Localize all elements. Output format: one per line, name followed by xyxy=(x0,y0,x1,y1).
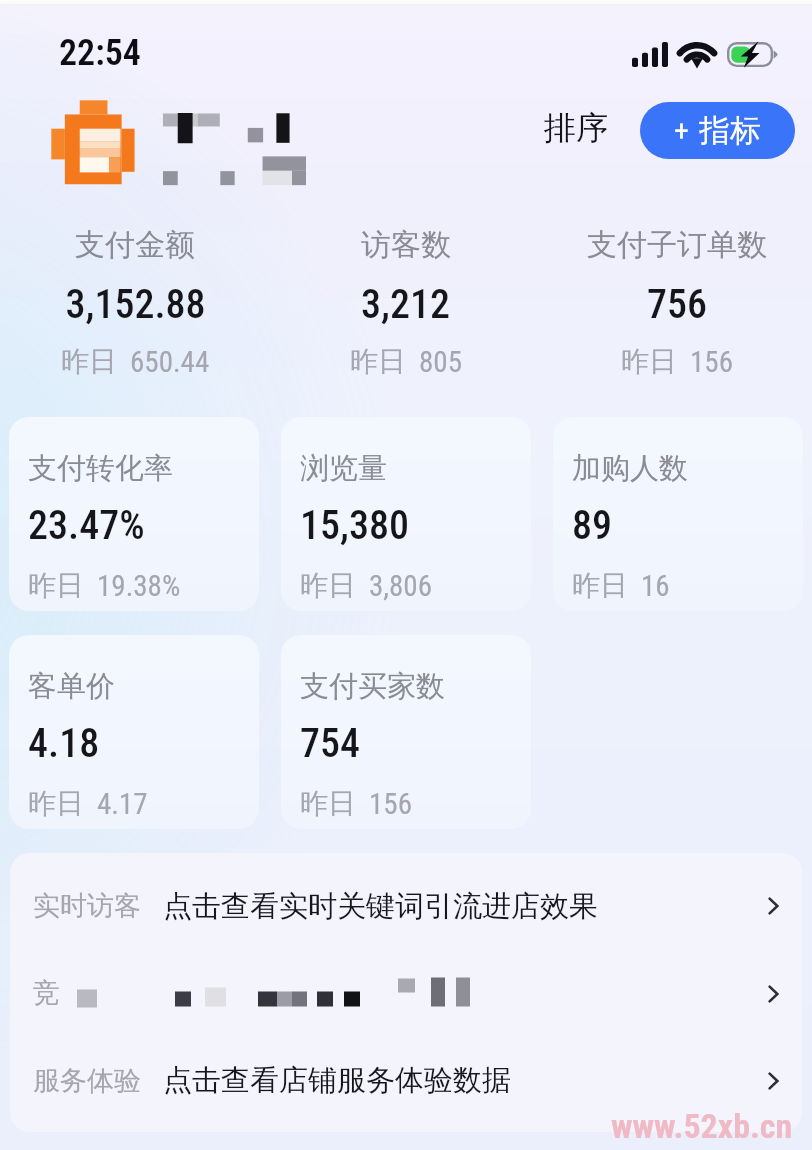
staticText: www.52xb.cn xyxy=(611,1106,793,1146)
staticText: 昨日 xyxy=(621,344,677,379)
button[interactable]: 加购人数 xyxy=(553,417,803,611)
staticText: 3,806 xyxy=(369,569,432,603)
staticText: 19.38% xyxy=(97,569,181,603)
staticText: 15,380 xyxy=(300,502,409,549)
staticText: 3,152.88 xyxy=(65,281,206,328)
staticText: 点击查看店铺服务体验数据 xyxy=(163,1062,511,1099)
staticText: 650.44 xyxy=(130,345,210,379)
button[interactable]: 支付子订单数 xyxy=(541,226,812,379)
staticText: 昨日 xyxy=(350,344,406,379)
staticText: 昨日 xyxy=(28,786,84,821)
other: 查看详情 xyxy=(767,1070,780,1092)
staticText: 22:54 xyxy=(59,32,141,74)
staticText: 昨日 xyxy=(572,568,628,603)
staticText: 竞 xyxy=(33,976,60,1010)
staticText: 昨日 xyxy=(61,344,117,379)
button[interactable]: 客单价 xyxy=(9,635,259,829)
staticText: 805 xyxy=(419,345,462,379)
staticText: 昨日 xyxy=(300,786,356,821)
staticText: + xyxy=(674,113,689,148)
staticText: 3,212 xyxy=(361,281,450,328)
button[interactable]: 支付金额 xyxy=(0,226,270,379)
staticText: 756 xyxy=(647,281,707,328)
staticText: 指标 xyxy=(699,111,761,150)
staticText: 浏览量 xyxy=(300,450,387,487)
staticText: 支付金额 xyxy=(75,226,195,264)
staticText: 加购人数 xyxy=(572,450,688,487)
other: 查看详情 xyxy=(767,983,780,1005)
staticText: 89 xyxy=(572,502,612,549)
staticText: 23.47% xyxy=(28,502,145,549)
button[interactable]: 实时访客 xyxy=(10,862,802,950)
staticText: 昨日 xyxy=(300,568,356,603)
staticText: 4.18 xyxy=(28,720,100,767)
staticText: 服务体验 xyxy=(33,1064,141,1098)
staticText: 156 xyxy=(369,787,412,821)
staticText: 昨日 xyxy=(28,568,84,603)
staticText: 访客数 xyxy=(361,226,451,264)
button[interactable]: 服务体验 xyxy=(10,1037,802,1124)
button[interactable]: + xyxy=(640,102,795,159)
other: 查看详情 xyxy=(767,895,780,917)
staticText: 16 xyxy=(641,569,670,603)
staticText: 客单价 xyxy=(28,668,115,705)
staticText: 4.17 xyxy=(97,787,148,821)
button[interactable]: 竞 xyxy=(10,950,802,1037)
button[interactable]: 浏览量 xyxy=(281,417,531,611)
staticText: 点击查看实时关键词引流进店效果 xyxy=(163,888,598,925)
staticText: 754 xyxy=(300,720,360,767)
staticText: 支付买家数 xyxy=(300,668,445,705)
staticText: 排序 xyxy=(544,108,608,148)
button[interactable]: 支付买家数 xyxy=(281,635,531,829)
staticText: 支付子订单数 xyxy=(587,226,767,264)
staticText: 支付转化率 xyxy=(28,450,173,487)
staticText: 实时访客 xyxy=(33,889,141,923)
button[interactable]: 支付转化率 xyxy=(9,417,259,611)
staticText: 156 xyxy=(690,345,733,379)
button[interactable]: 访客数 xyxy=(270,226,541,379)
button[interactable]: 排序 xyxy=(530,96,622,160)
